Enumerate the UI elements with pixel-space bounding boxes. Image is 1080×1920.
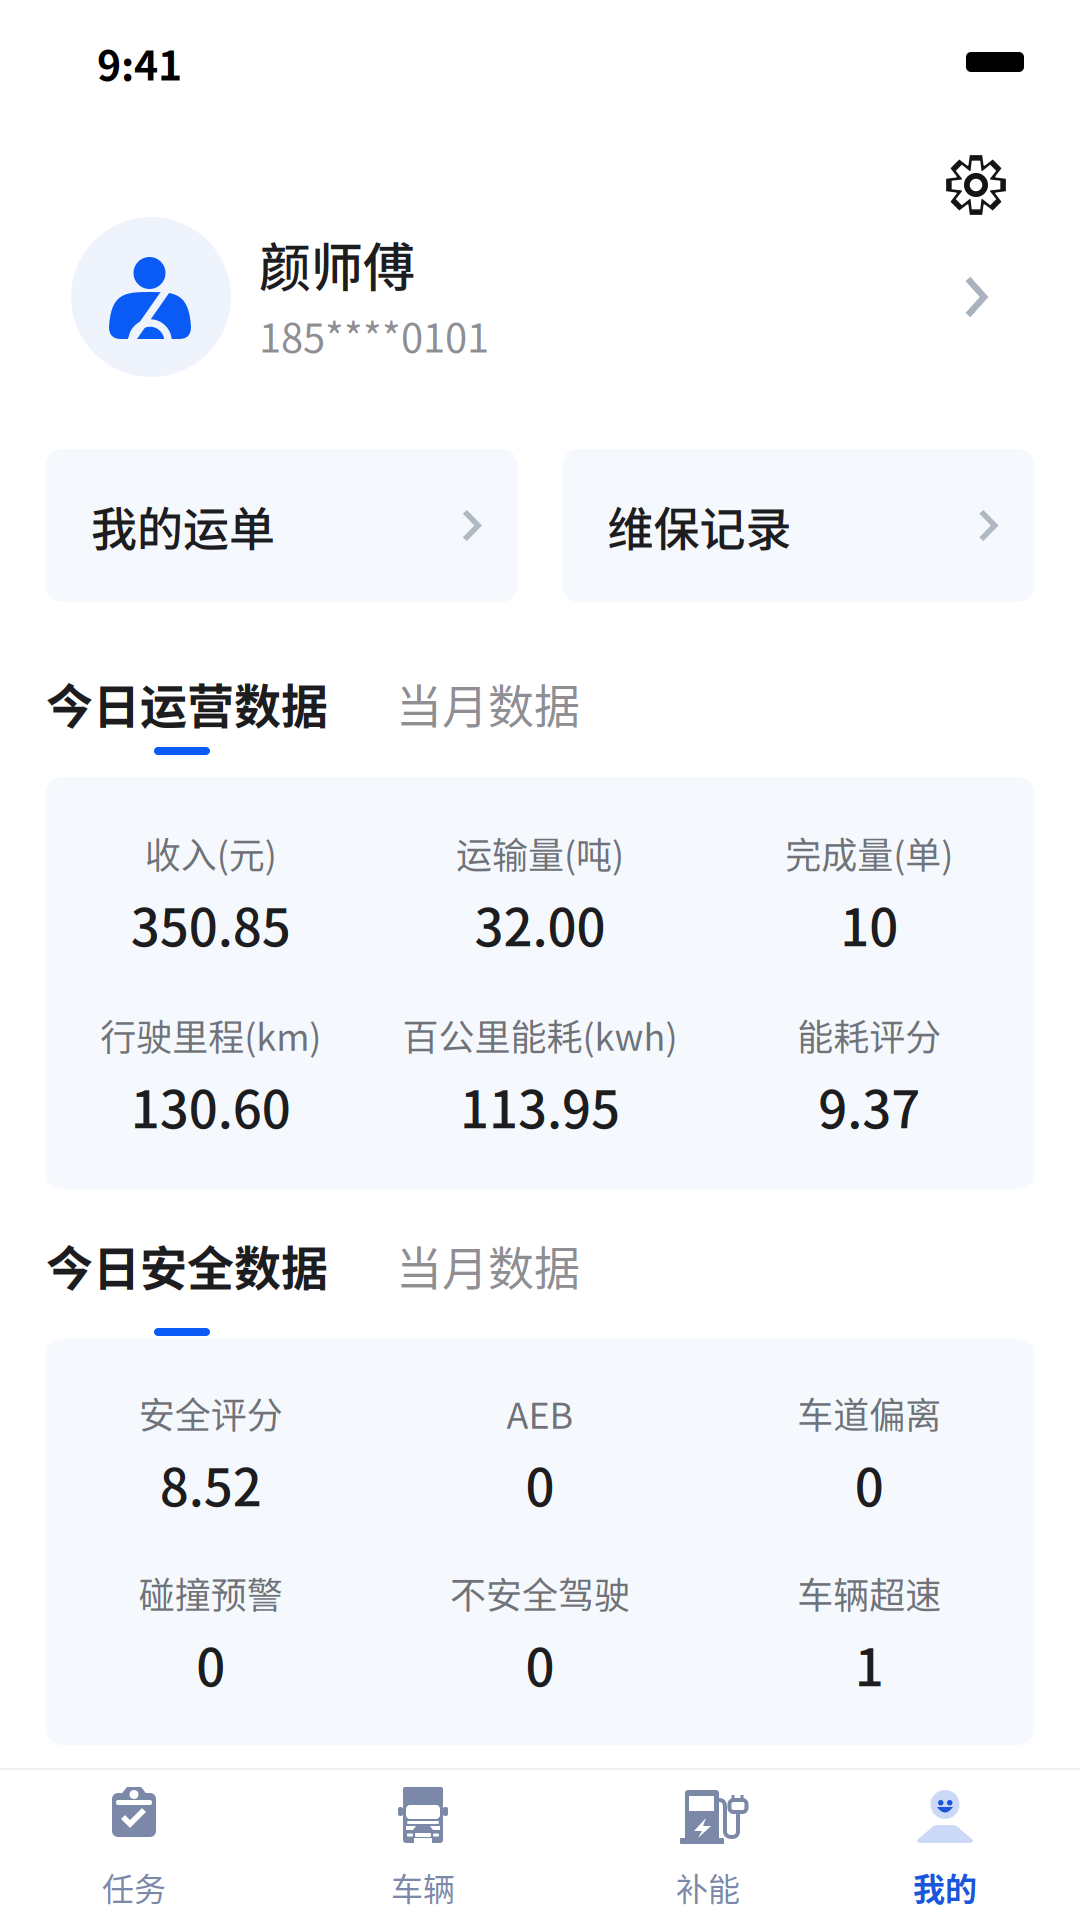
staticText: 补能 <box>676 1864 740 1910</box>
staticText: 行驶里程(km) <box>100 1009 321 1061</box>
button[interactable]: 我的 <box>845 1786 1045 1920</box>
staticText: 我的运单 <box>91 492 275 559</box>
staticText: 0 <box>196 1627 225 1701</box>
button[interactable]: 车辆 <box>323 1786 523 1920</box>
button[interactable]: 补能 <box>608 1786 808 1920</box>
button[interactable]: 我的运单 <box>46 449 517 602</box>
staticText: 维保记录 <box>607 492 791 559</box>
staticText: 不安全驾驶 <box>450 1567 630 1619</box>
staticText: AEB <box>506 1387 573 1439</box>
staticText: 车辆 <box>391 1864 455 1910</box>
staticText: 9.37 <box>818 1069 920 1143</box>
staticText: 安全评分 <box>139 1387 283 1439</box>
staticText: 当月数据 <box>396 670 580 736</box>
staticText: 185****0101 <box>259 306 489 364</box>
staticText: 8.52 <box>160 1447 262 1521</box>
staticText: 350.85 <box>131 887 291 961</box>
button[interactable]: 当月数据 <box>328 1234 580 1296</box>
button[interactable]: 今日安全数据 <box>46 1234 328 1296</box>
staticText: 运输量(吨) <box>456 827 624 879</box>
staticText: 我的 <box>913 1864 977 1910</box>
button[interactable]: Settings <box>931 140 1021 230</box>
staticText: 百公里能耗(kwh) <box>402 1009 677 1061</box>
staticText: 车道偏离 <box>797 1387 941 1439</box>
staticText: 113.95 <box>460 1069 620 1143</box>
staticText: 收入(元) <box>145 827 277 879</box>
staticText: 当月数据 <box>396 1232 580 1298</box>
staticText: 碰撞预警 <box>139 1567 283 1619</box>
staticText: 32.00 <box>474 887 605 961</box>
staticText: 完成量(单) <box>785 827 953 879</box>
button[interactable]: 当月数据 <box>328 672 580 734</box>
staticText: 能耗评分 <box>797 1009 941 1061</box>
button[interactable]: 任务 <box>34 1786 234 1920</box>
staticText: 颜师傅 <box>259 226 415 302</box>
staticText: 1 <box>855 1627 884 1701</box>
staticText: 10 <box>840 887 898 961</box>
button[interactable]: 颜师傅 <box>0 217 1080 377</box>
staticText: 9:41 <box>97 33 182 92</box>
staticText: 0 <box>525 1627 554 1701</box>
staticText: 0 <box>855 1447 884 1521</box>
staticText: 今日安全数据 <box>46 1231 328 1299</box>
staticText: 今日运营数据 <box>46 669 328 737</box>
button[interactable]: 维保记录 <box>562 449 1034 602</box>
staticText: 任务 <box>102 1864 166 1910</box>
staticText: 车辆超速 <box>797 1567 941 1619</box>
button[interactable]: 今日运营数据 <box>46 672 328 734</box>
staticText: 130.60 <box>131 1069 291 1143</box>
staticText: 0 <box>525 1447 554 1521</box>
